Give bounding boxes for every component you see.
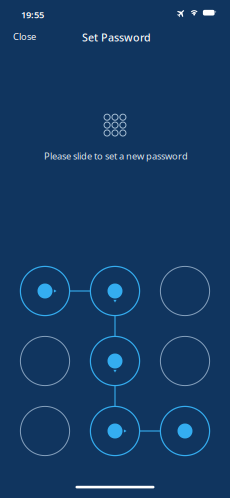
button[interactable]: Pattern dot 7 [20,406,70,456]
button[interactable]: Pattern dot 4 [20,336,70,386]
button[interactable]: Pattern dot 5 [90,336,140,386]
staticText: 19:55 [21,8,44,21]
staticText: Please slide to set a new password [44,150,188,162]
button[interactable]: Pattern dot 3 [160,266,210,316]
staticText: Set Password [82,30,151,44]
button[interactable]: Close [0,23,49,50]
button[interactable]: Pattern dot 8 [90,406,140,456]
button[interactable]: Pattern dot 9 [160,406,210,456]
button[interactable]: Pattern dot 6 [160,336,210,386]
button[interactable]: Pattern dot 2 [90,266,140,316]
button[interactable]: Pattern dot 1 [20,266,70,316]
staticText: Close [13,30,36,43]
